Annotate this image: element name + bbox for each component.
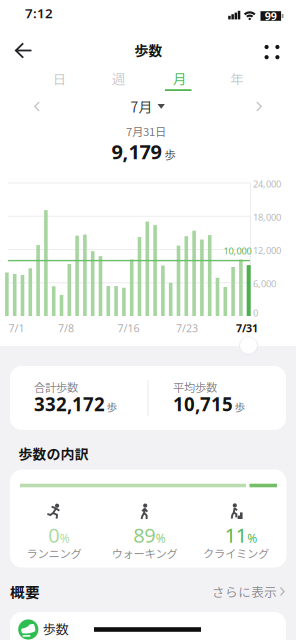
staticText: 0 [253,307,258,319]
staticText: 歩 [164,146,175,162]
staticText: ランニング [26,545,81,561]
staticText: % [247,530,257,546]
staticText: 7/16 [117,321,139,335]
staticText: 9,179 [111,138,161,165]
staticText: 7/23 [176,321,198,335]
button[interactable]: 年 [207,65,266,91]
staticText: 6,000 [253,278,276,290]
staticText: 7:12 [25,4,53,22]
button[interactable]: 日 [30,65,89,91]
button[interactable]: Back [0,0,296,640]
staticText: 日 [53,69,66,88]
button[interactable]: さらに表示 [0,0,296,640]
staticText: 7月31日 [126,123,166,139]
staticText: 週 [112,69,125,88]
staticText: 年 [230,69,243,88]
staticText: 合計歩数 [34,379,78,395]
staticText: ウォーキング [111,545,177,561]
staticText: 332,172 [34,392,105,416]
staticText: 99 [265,9,277,23]
button[interactable]: Previous month [0,0,296,640]
staticText: 10,715 [173,392,233,416]
staticText: 歩数 [134,40,162,60]
staticText: 歩 [106,399,117,414]
staticText: % [156,530,166,546]
staticText: 11 [225,522,247,548]
staticText: さらに表示 [212,582,277,601]
button[interactable]: 7月 [0,0,296,640]
staticText: 歩数 [42,619,68,638]
button[interactable]: Next month [0,0,296,640]
staticText: 10,000 [223,245,251,257]
button[interactable]: 月 [150,65,209,91]
staticText: 89 [133,522,155,548]
staticText: 歩 [234,399,245,414]
staticText: 7/31 [236,321,258,335]
button[interactable]: 歩数 [0,0,296,640]
staticText: 歩数の内訳 [18,443,88,464]
staticText: 18,000 [253,211,281,223]
staticText: 7/1 [8,321,24,335]
staticText: 24,000 [253,178,281,190]
staticText: 7月 [130,96,152,117]
staticText: 12,000 [253,244,281,257]
staticText: クライミング [203,545,269,561]
staticText: 平均歩数 [173,379,217,395]
staticText: % [60,530,70,546]
staticText: 7/8 [58,321,74,335]
button[interactable]: Menu [0,0,296,640]
button[interactable]: 週 [89,65,148,91]
staticText: 0 [48,522,59,548]
staticText: 概要 [10,581,40,602]
staticText: 月 [173,69,186,88]
